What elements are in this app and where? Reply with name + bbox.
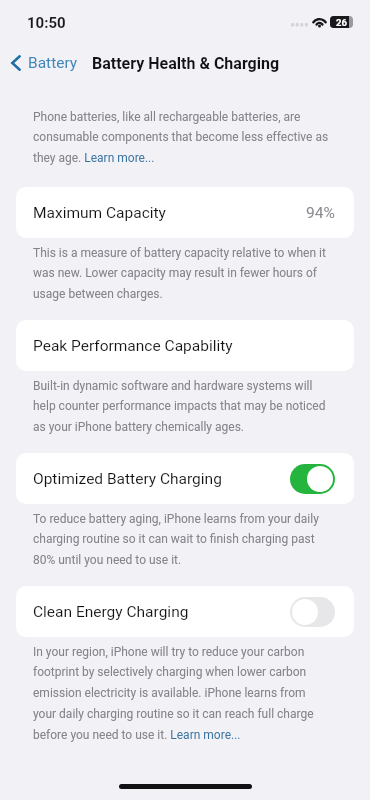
- button[interactable]: In your region, iPhone will try to reduc…: [33, 645, 330, 742]
- button[interactable]: Switch off: [290, 597, 335, 627]
- button[interactable]: Phone batteries, like all rechargeable b…: [33, 110, 330, 165]
- staticText: Battery Health & Charging: [92, 54, 280, 73]
- staticText: 10:50: [27, 14, 66, 32]
- staticText: Optimized Battery Charging: [33, 470, 222, 488]
- button[interactable]: Switch on: [290, 464, 335, 494]
- staticText: Peak Performance Capability: [33, 337, 233, 355]
- button[interactable]: Back to Battery: [0, 48, 84, 78]
- staticText: Maximum Capacity: [33, 204, 166, 222]
- staticText: 94%: [306, 204, 335, 222]
- other: Wi-Fi: [312, 16, 327, 28]
- staticText: This is a measure of battery capacity re…: [33, 246, 330, 301]
- staticText: Clean Energy Charging: [33, 603, 189, 621]
- staticText: To reduce battery aging, iPhone learns f…: [33, 512, 330, 567]
- staticText: Battery: [28, 54, 78, 72]
- button[interactable]: Peak Performance Capability: [16, 320, 354, 371]
- staticText: 26: [336, 17, 347, 28]
- staticText: Built-in dynamic software and hardware s…: [33, 379, 330, 434]
- button[interactable]: Maximum Capacity: [16, 187, 354, 238]
